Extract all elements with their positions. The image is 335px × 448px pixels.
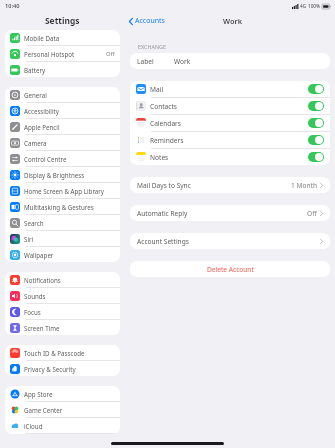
button[interactable]: General [5,87,120,102]
button[interactable]: Notifications [5,272,120,287]
button[interactable]: Mail [130,81,330,97]
button[interactable]: Notes enabled [308,152,324,162]
staticText: 10:40 [5,2,20,10]
button[interactable]: Reminders [130,132,330,148]
button[interactable]: Calendars enabled [308,118,324,128]
staticText: Mail Days to Sync [137,181,291,190]
button[interactable]: Personal Hotspot [5,46,120,61]
button[interactable]: Sounds [5,288,120,303]
button[interactable]: Contacts enabled [308,101,324,111]
button[interactable]: Mobile Data [5,30,120,45]
staticText: Wallpaper [24,251,115,259]
staticText: Notifications [24,276,115,284]
button[interactable]: Calendars [130,115,330,131]
button[interactable]: Label [130,53,330,69]
staticText: Privacy & Security [24,365,115,373]
button[interactable]: Apple Pencil [5,119,120,134]
staticText: Delete Account [207,265,254,274]
staticText: Calendars [150,119,308,128]
staticText: EXCHANGE [138,43,166,50]
staticText: 100% [308,3,321,9]
button[interactable]: App Store [5,386,120,401]
staticText: Sounds [24,292,115,300]
staticText: Accounts [135,16,165,26]
staticText: Game Center [24,406,115,414]
staticText: Search [24,219,115,227]
button[interactable]: Display & Brightness [5,167,120,182]
button[interactable]: Delete Account [130,261,330,277]
staticText: Off [106,50,115,58]
button[interactable]: Battery [5,62,120,77]
staticText: Camera [24,139,115,147]
staticText: Work [223,16,243,26]
staticText: Accessibility [24,107,115,115]
button[interactable]: Mail enabled [308,84,324,94]
staticText: Settings [45,15,80,26]
button[interactable]: Accounts [125,14,169,28]
staticText: Screen Time [24,324,115,332]
staticText: General [24,91,115,99]
staticText: Personal Hotspot [24,50,106,58]
button[interactable]: Wallpaper [5,247,120,262]
staticText: Label [137,57,154,66]
button[interactable]: Multitasking & Gestures [5,199,120,214]
staticText: Off [307,209,317,218]
staticText: Account Settings [137,237,320,246]
button[interactable]: Touch ID & Passcode [5,345,120,360]
button[interactable]: Notes [130,149,330,165]
staticText: Multitasking & Gestures [24,203,115,211]
staticText: Touch ID & Passcode [24,349,115,357]
staticText: Reminders [150,136,308,145]
staticText: Automatic Reply [137,209,307,218]
staticText: Control Centre [24,155,115,163]
button[interactable]: Camera [5,135,120,150]
staticText: Siri [24,235,115,243]
button[interactable]: Privacy & Security [5,361,120,376]
staticText: 1 Month [291,181,317,190]
button[interactable]: Search [5,215,120,230]
button[interactable]: Accessibility [5,103,120,118]
staticText: Mail [150,85,308,94]
staticText: Apple Pencil [24,123,115,131]
button[interactable]: Focus [5,304,120,319]
button[interactable]: Control Centre [5,151,120,166]
staticText: 4G [300,3,307,9]
staticText: Work [174,57,191,66]
staticText: iCloud [24,422,115,430]
staticText: Home Screen & App Library [24,187,115,195]
button[interactable]: Siri [5,231,120,246]
staticText: Battery [24,66,115,74]
button[interactable]: Automatic Reply [130,205,330,221]
button[interactable]: Account Settings [130,233,330,249]
button[interactable]: Game Center [5,402,120,417]
button[interactable]: Screen Time [5,320,120,335]
button[interactable]: Home Screen & App Library [5,183,120,198]
staticText: Mobile Data [24,34,115,42]
button[interactable]: Reminders enabled [308,135,324,145]
button[interactable]: Mail Days to Sync [130,177,330,193]
staticText: Notes [150,153,308,162]
button[interactable]: Contacts [130,98,330,114]
staticText: App Store [24,390,115,398]
staticText: Focus [24,308,115,316]
staticText: Contacts [150,102,308,111]
staticText: Display & Brightness [24,171,115,179]
button[interactable]: iCloud [5,418,120,433]
